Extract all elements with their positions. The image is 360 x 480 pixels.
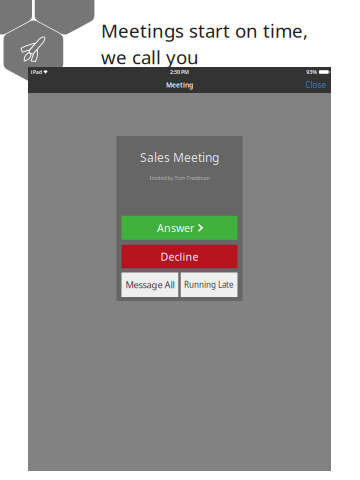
button[interactable]: Answer [121,216,237,240]
staticText: Decline [160,249,198,264]
button[interactable]: Decline [121,245,237,268]
staticText: Close [305,80,326,90]
button[interactable]: Running Late [181,272,237,297]
staticText: Invited by Tom Treidman [149,174,209,181]
staticText: Message All [125,279,174,291]
staticText: Sales Meeting [140,149,219,165]
staticText: Meeting [166,81,193,89]
staticText: iPad [31,68,42,76]
button[interactable]: Close [302,77,330,93]
staticText: Answer [157,221,194,235]
staticText: we call you [101,44,199,69]
staticText: Meetings start on time, [101,18,308,43]
staticText: Running Late [184,279,234,290]
button[interactable]: Message All [121,272,178,297]
staticText: 2:30 PM [170,68,189,76]
staticText: 93% [306,68,317,76]
